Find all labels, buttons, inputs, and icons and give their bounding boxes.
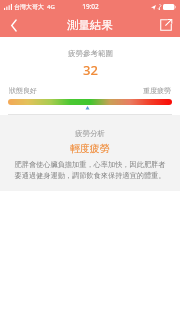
staticText: 19:02 [82,2,99,11]
button[interactable]: Share [152,13,180,37]
staticText: 疲勞參考範圍 [68,49,113,58]
staticText: 狀態良好 [9,86,37,95]
staticText: 4G [47,3,55,11]
staticText: 疲勞分析 [75,129,105,138]
button[interactable]: Back [0,13,28,37]
staticText: 輕度疲勞 [70,142,110,155]
staticText: 台灣大哥大 [14,3,44,11]
staticText: 重度疲勞 [143,86,171,95]
staticText: 32 [83,61,98,79]
staticText: 肥胖會使心臟負擔加重，心率加快，因此肥胖者要通過健身運動，調節飲食來保持適宜的體… [11,160,169,180]
staticText: 測量結果 [67,18,113,32]
